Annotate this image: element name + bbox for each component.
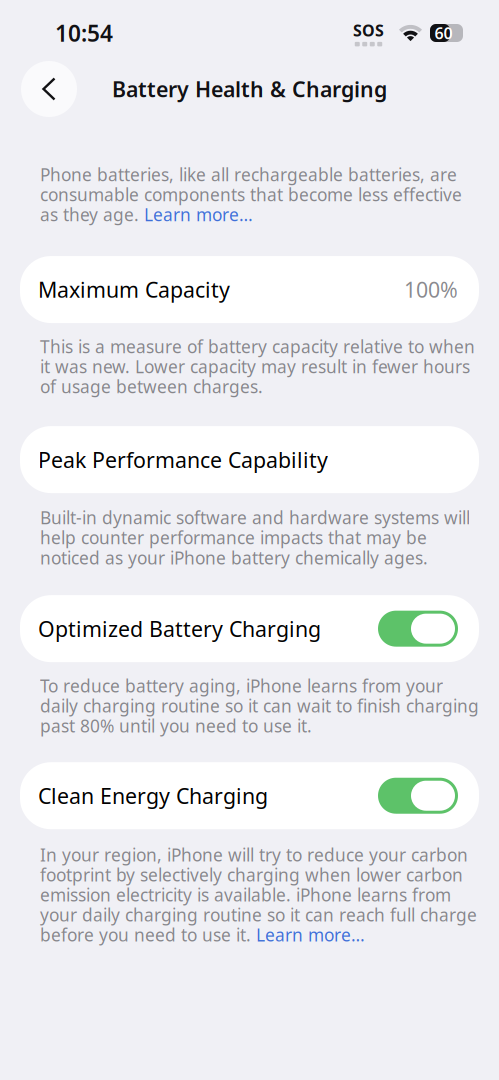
staticText: Optimized Battery Charging: [38, 614, 321, 643]
staticText: This is a measure of battery capacity re…: [40, 335, 475, 398]
staticText: 10:54: [55, 18, 113, 48]
staticText: 100%: [404, 275, 458, 304]
staticText: Clean Energy Charging: [38, 781, 268, 810]
button[interactable]: Clean Energy Charging: [38, 778, 458, 814]
staticText: In your region, iPhone will try to reduc…: [40, 843, 477, 946]
staticText: Maximum Capacity: [38, 275, 230, 304]
staticText: Battery Health & Charging: [112, 75, 387, 103]
staticText: To reduce battery aging, iPhone learns f…: [40, 674, 479, 737]
button[interactable]: Peak Performance Capability: [38, 445, 458, 474]
button[interactable]: Optimized Battery Charging: [38, 611, 458, 647]
button[interactable]: Back: [21, 61, 77, 117]
staticText: Peak Performance Capability: [38, 445, 328, 474]
staticText: Phone batteries, like all rechargeable b…: [40, 163, 462, 226]
staticText: 60: [434, 22, 452, 44]
staticText: SOS: [353, 20, 384, 41]
staticText: Built-in dynamic software and hardware s…: [40, 506, 470, 569]
button[interactable]: Maximum Capacity: [38, 275, 458, 304]
